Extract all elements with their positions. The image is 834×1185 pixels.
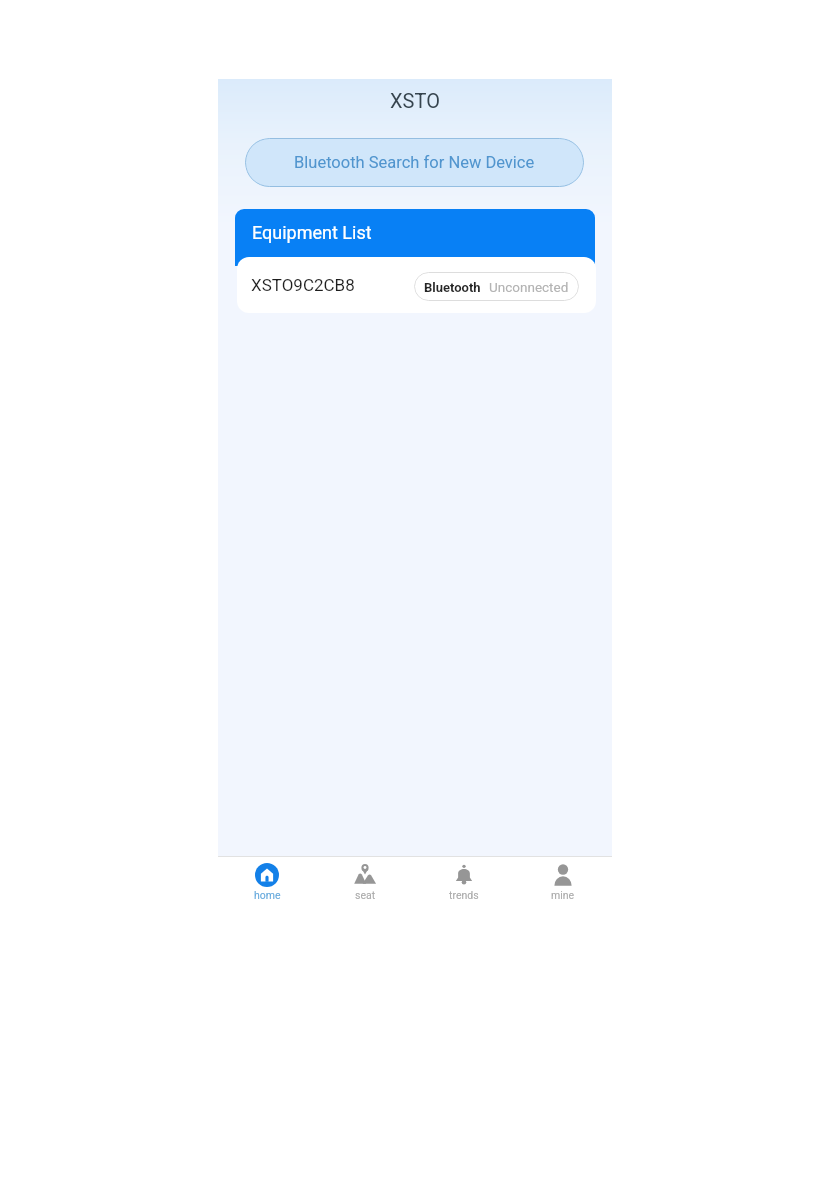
other: Home	[255, 863, 279, 887]
button[interactable]: Trends	[414, 860, 513, 909]
staticText: Unconnected	[489, 279, 569, 295]
button[interactable]: Mine	[513, 860, 612, 909]
staticText: trends	[449, 889, 479, 901]
button[interactable]: Home	[218, 860, 316, 909]
staticText: Bluetooth Search for New Device	[294, 153, 535, 172]
staticText: XSTO9C2CB8	[251, 275, 355, 295]
staticText: XSTO	[218, 89, 612, 112]
staticText: mine	[551, 889, 575, 901]
button[interactable]: Bluetooth	[414, 272, 579, 301]
button[interactable]: Bluetooth Search for New Device	[245, 138, 584, 187]
staticText: seat	[355, 889, 376, 901]
other: Trends	[452, 863, 476, 887]
other: Mine	[551, 863, 575, 887]
staticText: Bluetooth	[424, 280, 481, 295]
button[interactable]: XSTO9C2CB8	[237, 257, 596, 313]
staticText: Equipment List	[252, 222, 372, 243]
staticText: home	[254, 889, 281, 901]
button[interactable]: Seat	[316, 860, 414, 909]
other: Seat	[353, 863, 377, 887]
